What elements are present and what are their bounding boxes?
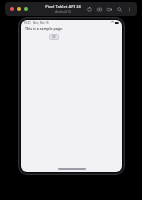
- staticText: Mon, Mar 18: [33, 21, 49, 25]
- button[interactable]: More options: [126, 6, 133, 13]
- button[interactable]: Record: [106, 6, 113, 13]
- button[interactable]: Rotate: [86, 6, 93, 13]
- button[interactable]: Minimize: [17, 7, 21, 11]
- staticText: Android 14: [55, 10, 71, 14]
- button[interactable]: Home: [58, 168, 86, 170]
- button[interactable]: Maximize: [24, 7, 28, 11]
- button[interactable]: OK: [49, 34, 59, 40]
- button[interactable]: Screenshot: [96, 6, 103, 13]
- staticText: This is a sample page.: [25, 26, 64, 31]
- button[interactable]: Zoom: [116, 6, 123, 13]
- button[interactable]: Close: [10, 7, 14, 11]
- staticText: Pixel Tablet API 34: [45, 4, 81, 9]
- staticText: OK: [52, 35, 56, 39]
- staticText: 10:21: [24, 21, 31, 25]
